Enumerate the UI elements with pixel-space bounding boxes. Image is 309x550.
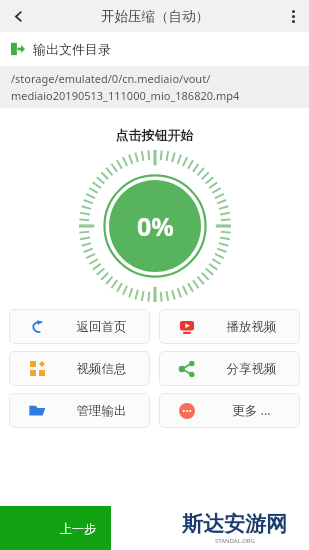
button[interactable]: 返回首页 <box>9 309 150 344</box>
staticText: mediaio20190513_111000_mio_186820.mp4 <box>11 88 240 103</box>
button[interactable]: 分享视频 <box>159 351 300 386</box>
button[interactable]: More options <box>277 0 309 32</box>
staticText: 输出文件目录 <box>33 41 111 57</box>
button[interactable]: 更多 ... <box>159 393 300 428</box>
button[interactable]: Start compression <box>79 150 231 302</box>
staticText: 播放视频 <box>209 319 294 335</box>
staticText: 开始压缩（自动） <box>101 8 209 25</box>
button[interactable]: Back <box>0 0 36 32</box>
staticText: 管理输出 <box>59 403 144 419</box>
staticText: 上一步 <box>60 521 96 536</box>
staticText: 返回首页 <box>59 319 144 335</box>
button[interactable]: 视频信息 <box>9 351 150 386</box>
button[interactable]: 上一步 <box>0 506 111 550</box>
staticText: 点击按钮开始 <box>0 127 309 143</box>
staticText: STANDAL.ORG <box>215 537 255 545</box>
staticText: 斯达安游网 <box>182 511 287 537</box>
staticText: /storage/emulated/0/cn.mediaio/vout/ <box>11 71 211 86</box>
staticText: 0% <box>137 209 174 243</box>
button[interactable]: 播放视频 <box>159 309 300 344</box>
button[interactable]: 管理输出 <box>9 393 150 428</box>
staticText: 视频信息 <box>59 361 144 377</box>
staticText: 更多 ... <box>209 402 294 419</box>
staticText: 分享视频 <box>209 361 294 377</box>
